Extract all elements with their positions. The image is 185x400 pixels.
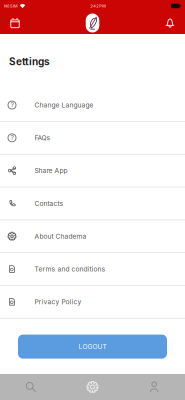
staticText: About Chadema [34, 232, 86, 240]
staticText: FAQs [34, 134, 50, 142]
button[interactable]: Terms and conditions [0, 253, 185, 286]
staticText: ? [10, 133, 13, 142]
button[interactable]: ? [0, 122, 185, 155]
staticText: Privacy Policy [34, 298, 81, 306]
staticText: 2:42 PM [90, 4, 106, 8]
button[interactable]: Search [0, 374, 62, 400]
staticText: Terms and conditions [34, 265, 105, 273]
staticText: Settings [9, 55, 50, 68]
button[interactable]: Contacts [0, 187, 185, 220]
staticText: Change Language [34, 101, 93, 109]
button[interactable]: LOGOUT [18, 335, 167, 359]
staticText: No SIM [4, 4, 18, 8]
button[interactable]: Calendar [0, 12, 30, 34]
button[interactable]: Settings [62, 374, 123, 400]
staticText: LOGOUT [78, 343, 106, 351]
staticText: ? [10, 101, 13, 109]
button[interactable]: ? [0, 89, 185, 122]
staticText: Contacts [34, 199, 63, 207]
button[interactable]: About Chadema [0, 220, 185, 253]
staticText: Share App [34, 167, 67, 175]
button[interactable]: Privacy Policy [0, 286, 185, 319]
button[interactable]: Notifications [155, 12, 185, 34]
button[interactable]: Profile [123, 374, 185, 400]
button[interactable]: Share App [0, 155, 185, 187]
